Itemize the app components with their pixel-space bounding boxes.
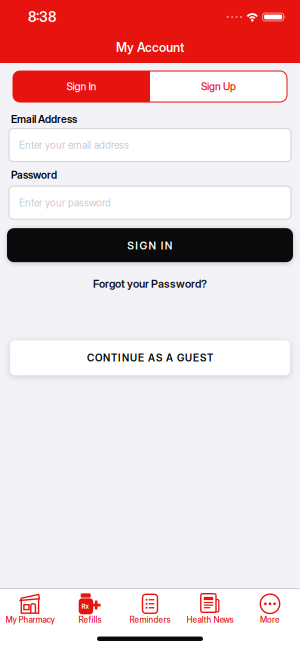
button[interactable]: Forgot your Password? (93, 277, 207, 290)
staticText: More (260, 615, 280, 625)
staticText: Reminders (129, 615, 170, 625)
staticText: Sign Up (201, 80, 236, 93)
staticText: Password (11, 169, 57, 181)
button[interactable]: Reminders (120, 593, 180, 625)
staticText: Forgot your Password? (93, 277, 207, 290)
staticText: Email Address (11, 113, 77, 126)
staticText: SIGN IN (127, 239, 173, 252)
staticText: Sign In (66, 80, 96, 93)
staticText: Health News (186, 615, 233, 625)
staticText: Rx (81, 602, 88, 610)
button[interactable]: SIGN IN (0, 228, 300, 262)
button[interactable]: Rx (60, 593, 120, 625)
staticText: My Account (116, 40, 184, 55)
staticText: 8:38 (28, 8, 56, 25)
button[interactable]: CONTINUE AS A GUEST (0, 340, 300, 375)
staticText: Refills (78, 615, 101, 625)
staticText: Enter your email address (19, 139, 129, 151)
button[interactable]: My Pharmacy (0, 593, 60, 625)
button[interactable]: More (240, 593, 300, 625)
button[interactable]: Sign In (13, 71, 150, 102)
staticText: Enter your password (19, 196, 111, 209)
staticText: CONTINUE AS A GUEST (87, 352, 213, 364)
button[interactable]: Sign Up (150, 71, 287, 102)
staticText: My Pharmacy (5, 615, 54, 625)
button[interactable]: Health News (180, 593, 240, 625)
